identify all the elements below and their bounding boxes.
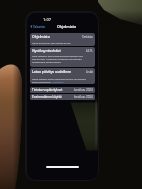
staticText: ehtoi hyväksyttä. — [32, 80, 52, 83]
staticText: 1:07 — [43, 17, 51, 22]
staticText: Tietoturvapäivitykset — [32, 88, 63, 92]
staticText: kesäkuu 2024 — [74, 95, 93, 99]
staticText: hyväksyttyä käyttö ehtoja. — [32, 60, 62, 63]
staticText: Ensimmäinen käyttö — [32, 95, 62, 99]
staticText: Sovit ilmoitus siitä hyväksymistä ehtoih… — [32, 54, 83, 57]
button[interactable]: Ensimmäinen käyttö — [30, 94, 95, 100]
staticText: Tämä laitteen kokko tarkistaa iPhone on … — [32, 77, 86, 80]
button[interactable]: Lataa päivitys uudelleen — [30, 68, 95, 84]
button[interactable]: Ohjelmisto — [30, 33, 95, 46]
button[interactable]: Takaisin — [29, 23, 47, 29]
staticText: Tämä iPhone on ajan tasalla ja sen — [32, 41, 71, 44]
staticText: Lataa päivitys uudelleen — [32, 69, 72, 74]
button[interactable]: Tietoturvapäivitykset — [30, 87, 95, 93]
staticText: Takaisin — [33, 24, 46, 28]
staticText: Lisää — [86, 70, 93, 74]
staticText: sillä eli uusi. Annetaan hyväksyä voit k… — [32, 57, 82, 60]
button[interactable]: Hyväksymisehdot — [30, 47, 95, 67]
staticText: Ohjelmisto — [57, 24, 77, 29]
staticText: Tarkista — [82, 35, 93, 39]
staticText: 64 % — [86, 49, 93, 53]
staticText: Hyväksymisehdot — [32, 48, 61, 53]
staticText: kesäkuu 2024 — [74, 88, 93, 92]
staticText: Ohjelmisto — [32, 34, 50, 39]
staticText: Lisätietoja — [52, 80, 64, 83]
